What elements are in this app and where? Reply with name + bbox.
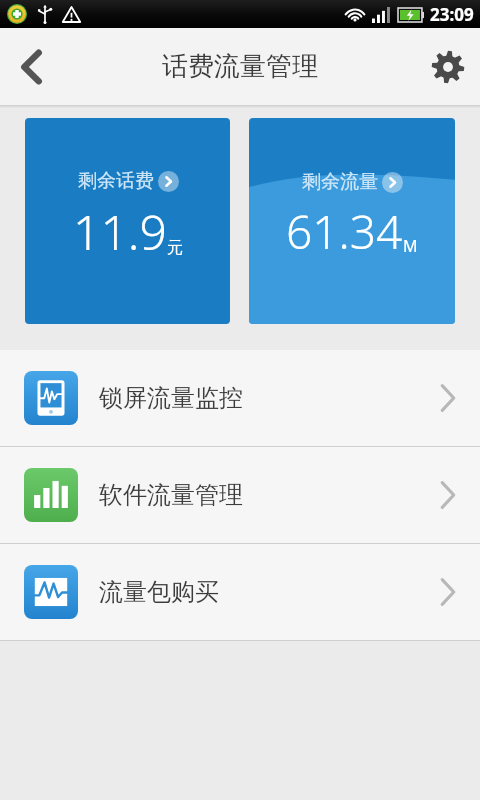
- button[interactable]: 剩余流量: [249, 118, 455, 324]
- staticText: 锁屏流量监控: [99, 383, 440, 413]
- staticText: 流量包购买: [99, 577, 440, 607]
- staticText: 元: [167, 238, 183, 258]
- button[interactable]: Settings: [416, 35, 480, 99]
- staticText: 61.34: [286, 200, 403, 263]
- staticText: 11.9: [73, 199, 167, 264]
- button[interactable]: 锁屏流量监控: [0, 350, 480, 446]
- staticText: M: [403, 235, 418, 257]
- button[interactable]: Back: [0, 35, 64, 99]
- staticText: 剩余流量: [302, 170, 378, 194]
- button[interactable]: 软件流量管理: [0, 447, 480, 543]
- staticText: 剩余话费: [78, 169, 154, 193]
- staticText: 话费流量管理: [162, 50, 318, 83]
- staticText: 23:09: [430, 3, 474, 26]
- staticText: 软件流量管理: [99, 480, 440, 510]
- button[interactable]: 流量包购买: [0, 544, 480, 640]
- button[interactable]: 剩余话费: [25, 118, 230, 324]
